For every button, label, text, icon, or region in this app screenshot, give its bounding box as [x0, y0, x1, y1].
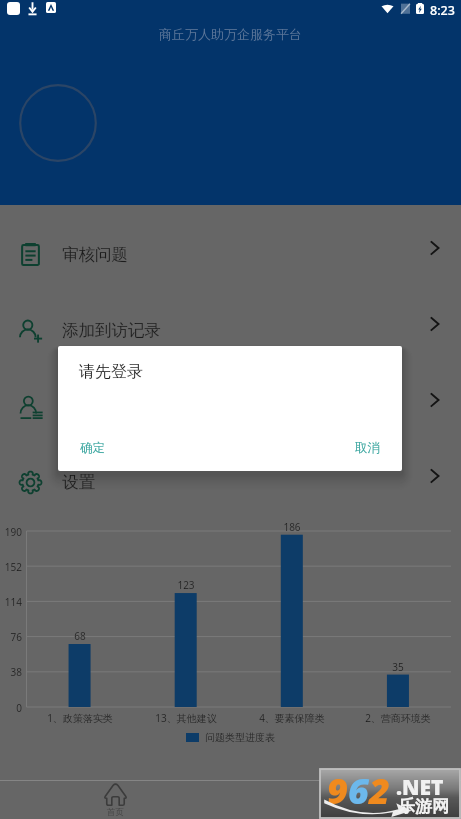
- staticText: 请先登录: [79, 362, 143, 382]
- staticText: .NET: [396, 773, 444, 802]
- staticText: 38: [0, 665, 22, 679]
- staticText: 1、政策落实类: [30, 711, 130, 725]
- staticText: 8:23: [430, 2, 455, 19]
- staticText: 添加到访记录: [62, 320, 161, 341]
- staticText: 13、其他建议: [136, 711, 236, 725]
- staticText: 首页: [107, 807, 124, 818]
- button[interactable]: 设置: [0, 444, 461, 520]
- other: 我的: [334, 783, 357, 806]
- staticText: 取消: [355, 440, 380, 456]
- other: 首页: [104, 783, 127, 806]
- staticText: 问题类型进度表: [205, 731, 275, 744]
- button[interactable]: 首页: [0, 781, 230, 819]
- staticText: 4、要素保障类: [242, 711, 342, 725]
- staticText: 2、营商环境类: [348, 711, 448, 725]
- staticText: 152: [0, 560, 22, 574]
- staticText: 9: [327, 766, 348, 815]
- staticText: 乐游网: [398, 796, 449, 817]
- staticText: 我的: [337, 807, 354, 818]
- staticText: 0: [0, 701, 22, 715]
- staticText: 35: [373, 660, 423, 674]
- button[interactable]: 我的: [230, 781, 461, 819]
- button[interactable]: 添加到访记录: [0, 292, 461, 368]
- staticText: 商丘万人助万企服务平台: [159, 26, 302, 42]
- staticText: 114: [0, 595, 22, 609]
- staticText: 确定: [80, 440, 105, 456]
- button[interactable]: 确定: [58, 430, 121, 471]
- staticText: 2: [369, 766, 390, 815]
- staticText: 审核问题: [62, 244, 128, 265]
- staticText: 190: [0, 525, 22, 539]
- staticText: 6: [348, 766, 369, 815]
- staticText: 68: [55, 629, 105, 643]
- staticText: 76: [0, 630, 22, 644]
- staticText: 186: [267, 520, 317, 534]
- button[interactable]: 审核问题: [0, 216, 461, 292]
- staticText: 123: [161, 578, 211, 592]
- staticText: 设置: [62, 472, 95, 493]
- button[interactable]: 到访记录: [0, 368, 461, 444]
- button[interactable]: 取消: [339, 430, 402, 471]
